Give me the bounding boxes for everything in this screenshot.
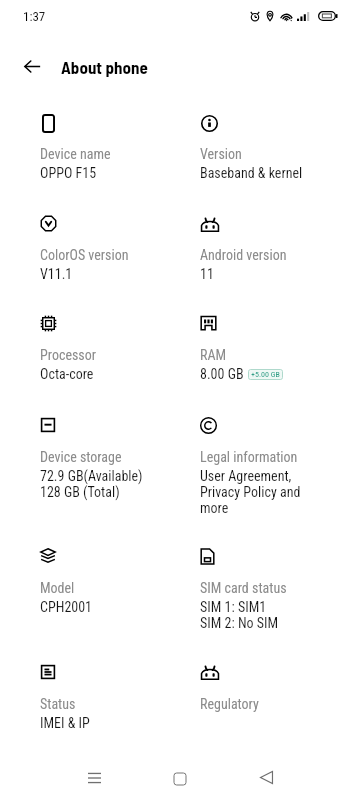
staticText: V11.1: [40, 266, 73, 282]
staticText: 11: [200, 266, 214, 282]
button[interactable]: Regulatory: [200, 664, 350, 715]
staticText: RAM: [200, 347, 227, 363]
staticText: Octa-core: [40, 366, 94, 382]
staticText: IMEI & IP: [40, 715, 90, 731]
button[interactable]: Processor: [40, 315, 190, 382]
staticText: 1:37: [23, 9, 46, 24]
button[interactable]: Back: [14, 48, 50, 84]
button[interactable]: Version: [200, 114, 350, 181]
staticText: CPH2001: [40, 599, 93, 615]
button[interactable]: Recent apps: [70, 754, 118, 800]
button[interactable]: Home: [156, 754, 204, 800]
staticText: SIM 2: No SIM: [200, 615, 279, 631]
button[interactable]: Status: [40, 664, 190, 731]
staticText: About phone: [61, 57, 148, 77]
button[interactable]: Model: [40, 548, 190, 615]
staticText: Device name: [40, 146, 111, 162]
button[interactable]: Android version: [200, 215, 350, 282]
staticText: Baseband & kernel: [200, 165, 303, 181]
staticText: 128 GB (Total): [40, 484, 120, 500]
button[interactable]: Legal information: [200, 417, 350, 516]
staticText: SIM card status: [200, 580, 287, 596]
staticText: +5.00 GB: [251, 370, 280, 379]
staticText: OPPO F15: [40, 165, 97, 181]
staticText: Model: [40, 580, 75, 596]
button[interactable]: Back: [242, 754, 290, 800]
staticText: 72.9 GB(Available): [40, 468, 143, 484]
staticText: Android version: [200, 247, 287, 263]
button[interactable]: SIM card status: [200, 548, 350, 631]
staticText: more: [200, 500, 229, 516]
staticText: Privacy Policy and: [200, 484, 301, 500]
button[interactable]: Device storage: [40, 417, 190, 500]
staticText: ColorOS version: [40, 247, 129, 263]
staticText: User Agreement,: [200, 468, 292, 484]
button[interactable]: RAM: [200, 315, 350, 382]
staticText: Status: [40, 696, 76, 712]
staticText: Processor: [40, 347, 97, 363]
button[interactable]: Device name: [40, 114, 190, 181]
staticText: Regulatory: [200, 696, 259, 712]
staticText: 8.00 GB: [200, 366, 244, 382]
staticText: SIM 1: SIM1: [200, 599, 267, 615]
staticText: Version: [200, 146, 242, 162]
staticText: Legal information: [200, 449, 298, 465]
staticText: Device storage: [40, 449, 122, 465]
button[interactable]: ColorOS version: [40, 215, 190, 282]
